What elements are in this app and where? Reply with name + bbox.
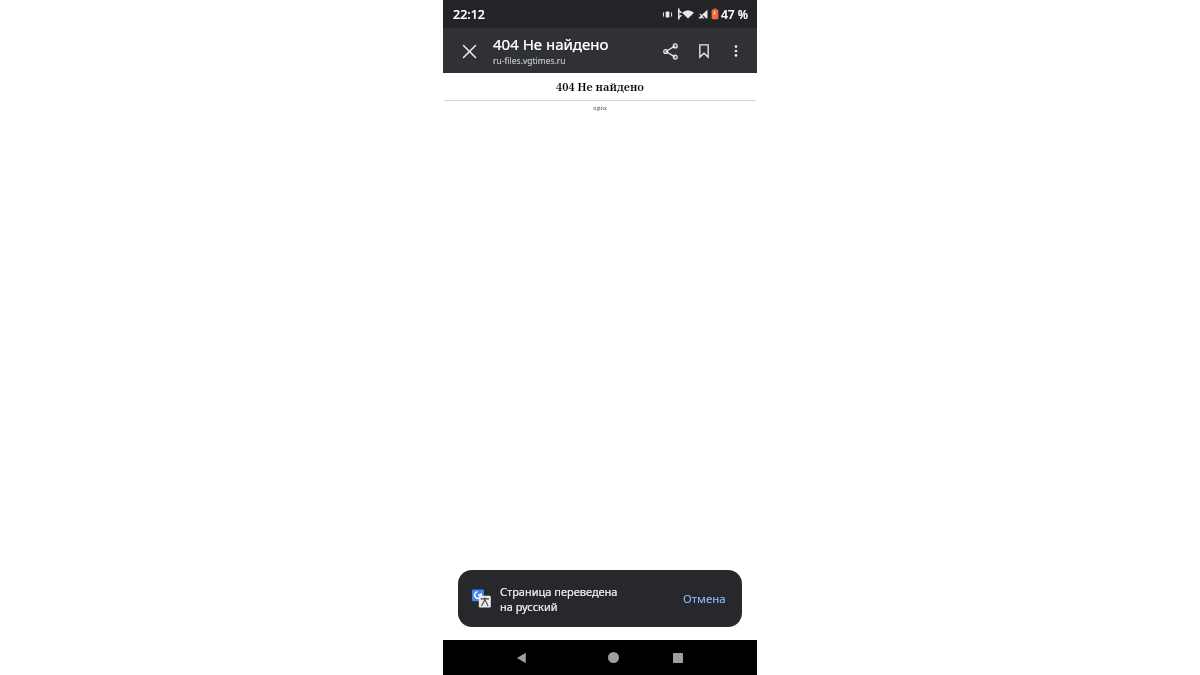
staticText: ru-files.vgtimes.ru	[493, 55, 566, 67]
button[interactable]: Close	[449, 31, 489, 71]
button[interactable]: Back	[500, 640, 544, 675]
staticText: 404 Не найдено	[443, 79, 757, 94]
button[interactable]: Страница переведена	[458, 570, 742, 627]
button[interactable]: Home	[591, 640, 635, 675]
button[interactable]: More options	[721, 36, 751, 66]
button[interactable]: Bookmark	[687, 34, 721, 68]
staticText: 47 %	[721, 6, 749, 22]
staticText: 404 Не найдено	[493, 34, 609, 54]
button[interactable]: Share	[653, 34, 687, 68]
staticText: Отмена	[683, 591, 726, 607]
button[interactable]: 404 Не найдено	[493, 34, 643, 67]
staticText: 22:12	[453, 6, 486, 23]
staticText: Страница переведена	[500, 584, 618, 599]
button[interactable]: Отмена	[681, 585, 728, 613]
staticText: на русский	[500, 599, 558, 614]
staticText: nginx	[443, 105, 757, 112]
button[interactable]: Recent apps	[656, 640, 700, 675]
